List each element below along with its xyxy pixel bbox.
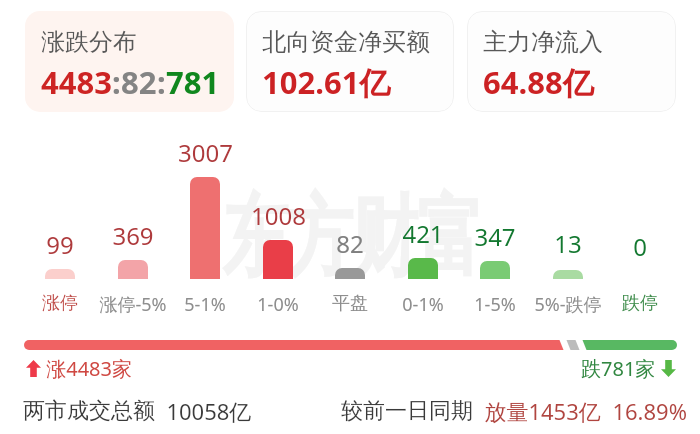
staticText: 16.89%: [601, 396, 687, 426]
button[interactable]: 北向资金净买额: [246, 11, 454, 112]
staticText: 0: [633, 230, 647, 260]
staticText: 涨停: [42, 292, 78, 314]
button[interactable]: 涨跌分布: [25, 11, 234, 112]
staticText: 5-1%: [184, 292, 226, 314]
staticText: 781: [166, 61, 220, 103]
staticText: 1008: [251, 199, 306, 229]
staticText: 北向资金净买额: [262, 27, 430, 57]
staticText: :: [112, 61, 121, 103]
staticText: 82: [121, 61, 157, 103]
other: Declining stocks: [661, 360, 676, 377]
staticText: 13: [554, 227, 582, 257]
staticText: 跌停: [622, 292, 658, 314]
staticText: 5%-跌停: [534, 292, 602, 314]
staticText: 369: [112, 219, 154, 249]
staticText: :: [157, 61, 166, 103]
staticText: 82: [336, 227, 364, 257]
staticText: 涨停-5%: [99, 292, 167, 314]
staticText: 102.61亿: [262, 61, 391, 103]
other: Advancing stocks: [26, 360, 41, 377]
staticText: 4483: [41, 61, 112, 103]
staticText: 99: [46, 228, 74, 258]
button[interactable]: 跌781家: [581, 355, 676, 382]
button[interactable]: Advancing stocks: [26, 355, 132, 382]
staticText: 347: [474, 220, 516, 250]
staticText: 东方财富: [222, 182, 482, 293]
staticText: 涨跌分布: [41, 27, 137, 57]
staticText: 平盘: [332, 292, 368, 314]
staticText: 1-0%: [257, 292, 299, 314]
staticText: 跌781家: [581, 355, 661, 382]
staticText: 1-5%: [474, 292, 516, 314]
button[interactable]: 主力净流入: [467, 11, 676, 112]
staticText: 3007: [178, 136, 233, 166]
staticText: 较前一日同期: [341, 397, 473, 425]
staticText: 421: [402, 217, 444, 247]
staticText: 放量1453亿: [473, 396, 601, 426]
staticText: 涨4483家: [41, 355, 132, 382]
staticText: 两市成交总额: [23, 397, 155, 425]
staticText: 主力净流入: [483, 27, 603, 57]
staticText: 64.88亿: [483, 61, 594, 103]
staticText: 0-1%: [402, 292, 444, 314]
staticText: 10058亿: [155, 396, 252, 426]
